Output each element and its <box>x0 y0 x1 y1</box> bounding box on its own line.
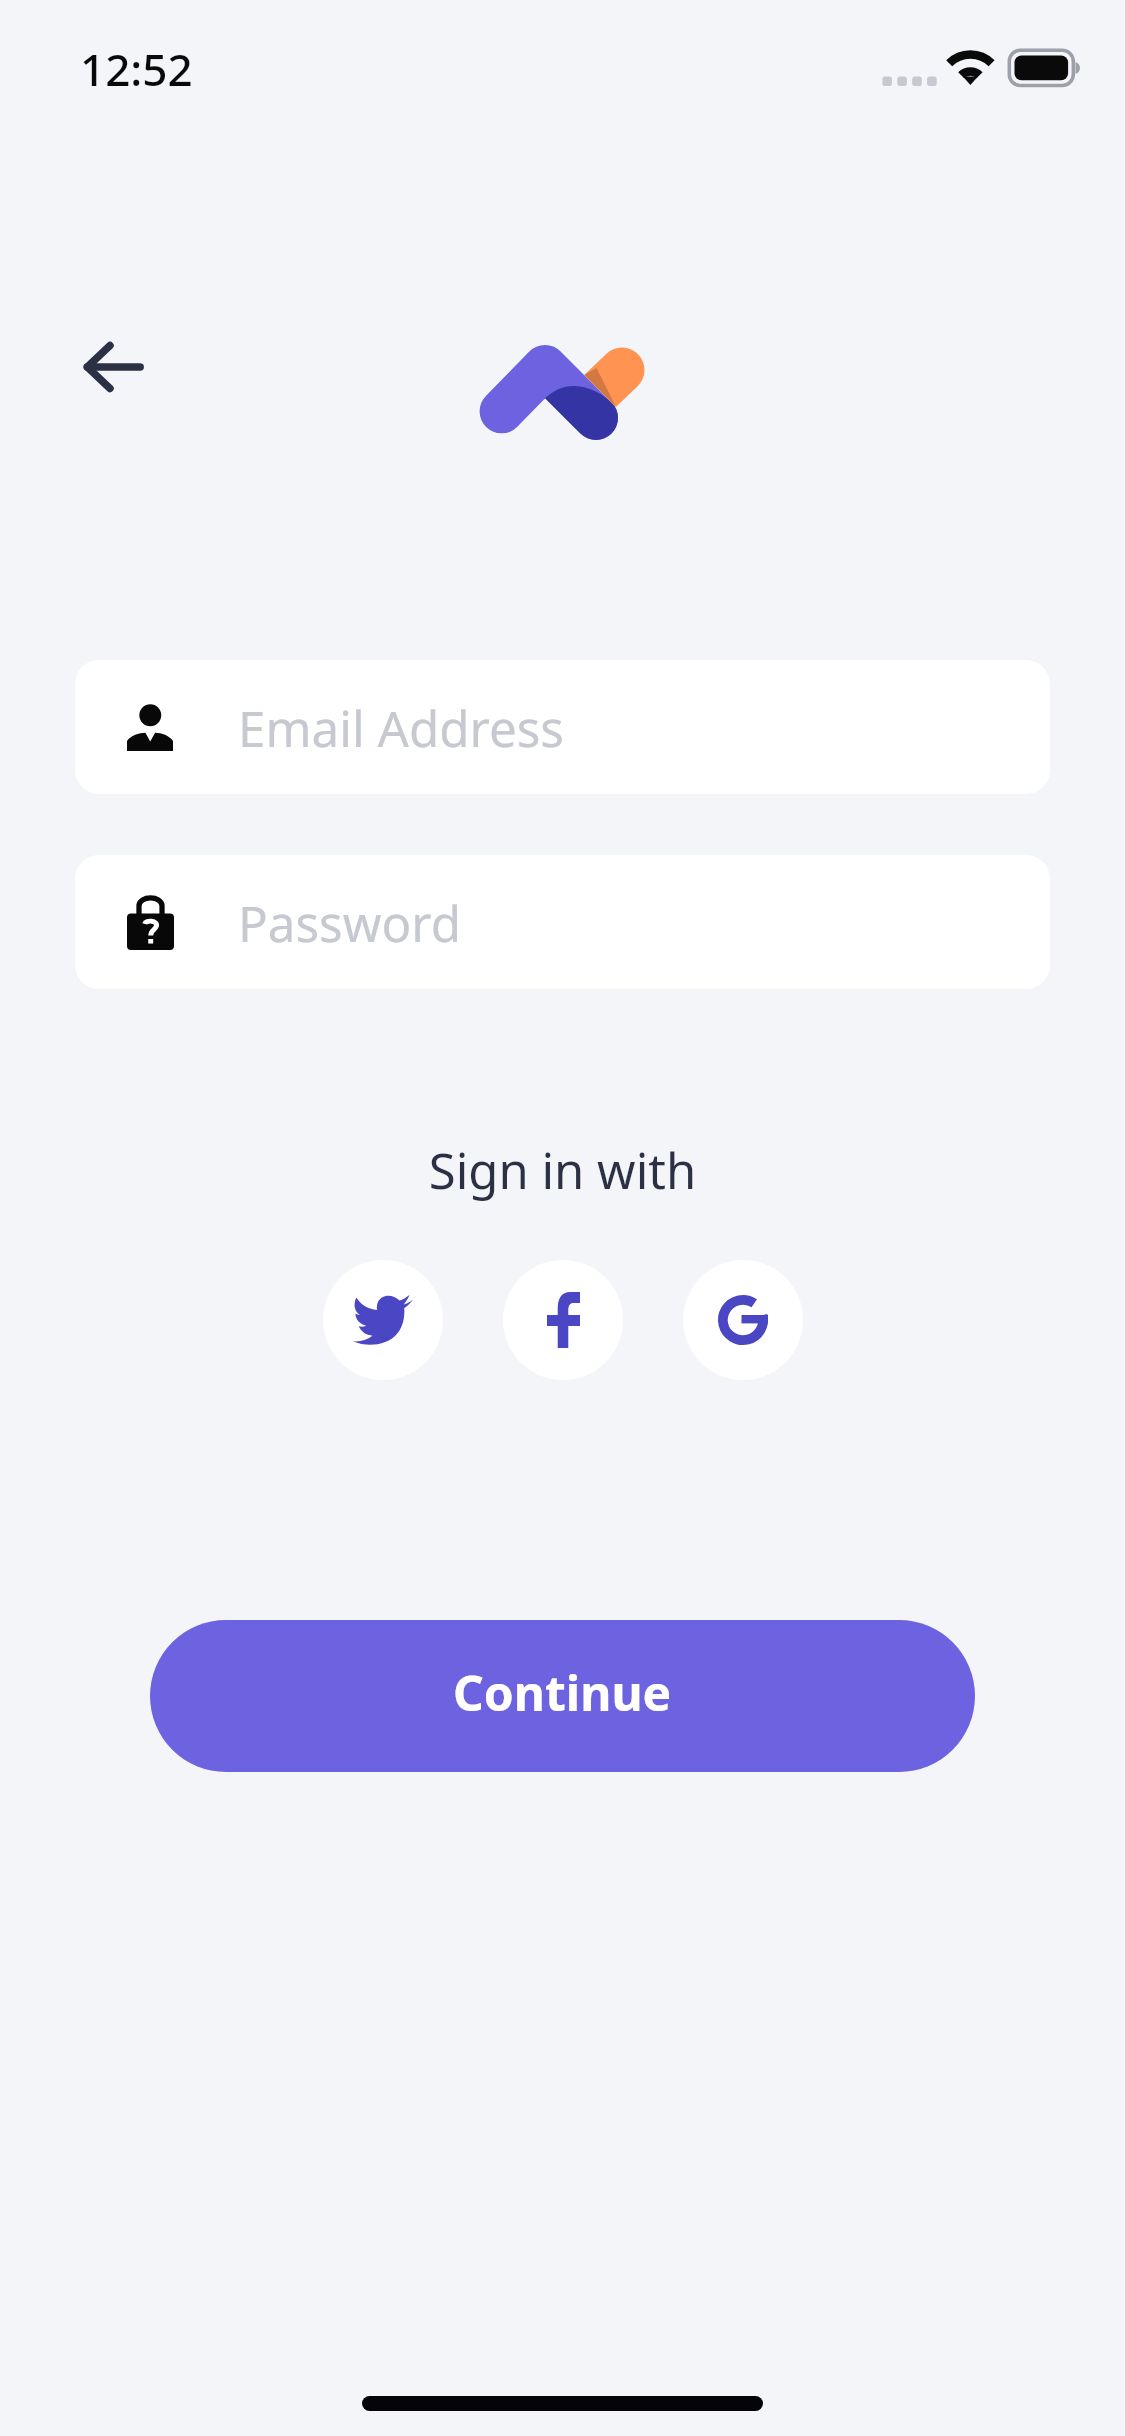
button[interactable]: Email Address <box>75 660 1050 794</box>
button[interactable]: Sign in with Google <box>683 1260 803 1380</box>
staticText: Password <box>238 889 461 956</box>
staticText: 12:52 <box>80 39 193 99</box>
staticText: Continue <box>453 1660 672 1725</box>
button[interactable]: Back <box>68 322 158 412</box>
staticText: Sign in with <box>0 1137 1125 1204</box>
button[interactable]: Password <box>75 855 1050 989</box>
button[interactable]: Sign in with Twitter <box>323 1260 443 1380</box>
button[interactable]: Continue <box>150 1620 975 1772</box>
button[interactable]: Sign in with Facebook <box>503 1260 623 1380</box>
staticText: Email Address <box>238 694 564 761</box>
